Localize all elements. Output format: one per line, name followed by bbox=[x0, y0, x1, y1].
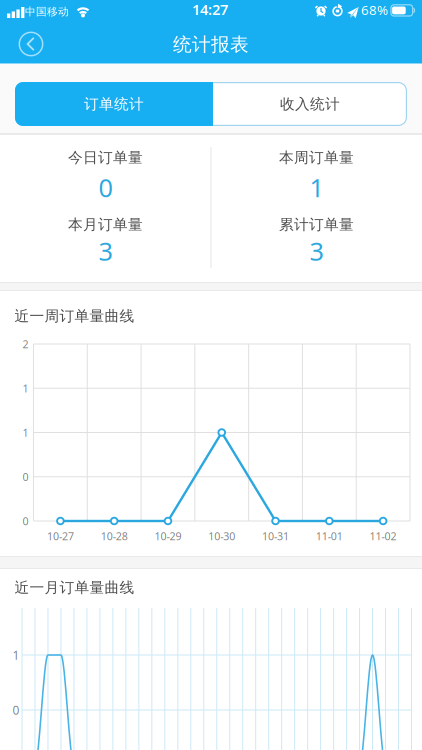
staticText: 1 bbox=[22, 381, 28, 395]
staticText: 1 bbox=[12, 647, 19, 663]
staticText: 68% bbox=[361, 1, 388, 19]
staticText: 14:27 bbox=[192, 0, 228, 19]
staticText: 0 bbox=[12, 702, 19, 718]
staticText: 0 bbox=[22, 514, 28, 528]
staticText: 3 bbox=[98, 234, 112, 268]
staticText: 1 bbox=[22, 425, 28, 440]
staticText: 本月订单量 bbox=[68, 215, 143, 233]
staticText: 10-31 bbox=[262, 529, 289, 543]
staticText: 10-28 bbox=[101, 529, 128, 543]
staticText: 0 bbox=[22, 470, 28, 484]
button[interactable]: Back bbox=[0, 0, 422, 750]
staticText: 收入统计 bbox=[280, 95, 340, 113]
button[interactable]: 收入统计 bbox=[213, 82, 407, 126]
staticText: 0 bbox=[98, 171, 112, 204]
staticText: 统计报表 bbox=[173, 33, 249, 56]
staticText: 1 bbox=[309, 171, 323, 204]
staticText: 10-30 bbox=[208, 529, 235, 543]
staticText: 累计订单量 bbox=[279, 215, 354, 233]
staticText: 本周订单量 bbox=[279, 148, 354, 166]
staticText: 中国移动 bbox=[25, 5, 69, 18]
staticText: 订单统计 bbox=[84, 95, 144, 113]
staticText: 2 bbox=[22, 337, 28, 351]
staticText: 10-27 bbox=[47, 529, 74, 543]
staticText: 近一周订单量曲线 bbox=[14, 307, 134, 325]
staticText: 近一月订单量曲线 bbox=[14, 578, 134, 596]
staticText: 11-02 bbox=[370, 529, 397, 543]
staticText: 11-01 bbox=[316, 529, 343, 543]
button[interactable]: 订单统计 bbox=[15, 82, 213, 126]
staticText: 10-29 bbox=[154, 529, 181, 543]
staticText: 3 bbox=[309, 234, 323, 268]
staticText: 今日订单量 bbox=[68, 148, 143, 166]
